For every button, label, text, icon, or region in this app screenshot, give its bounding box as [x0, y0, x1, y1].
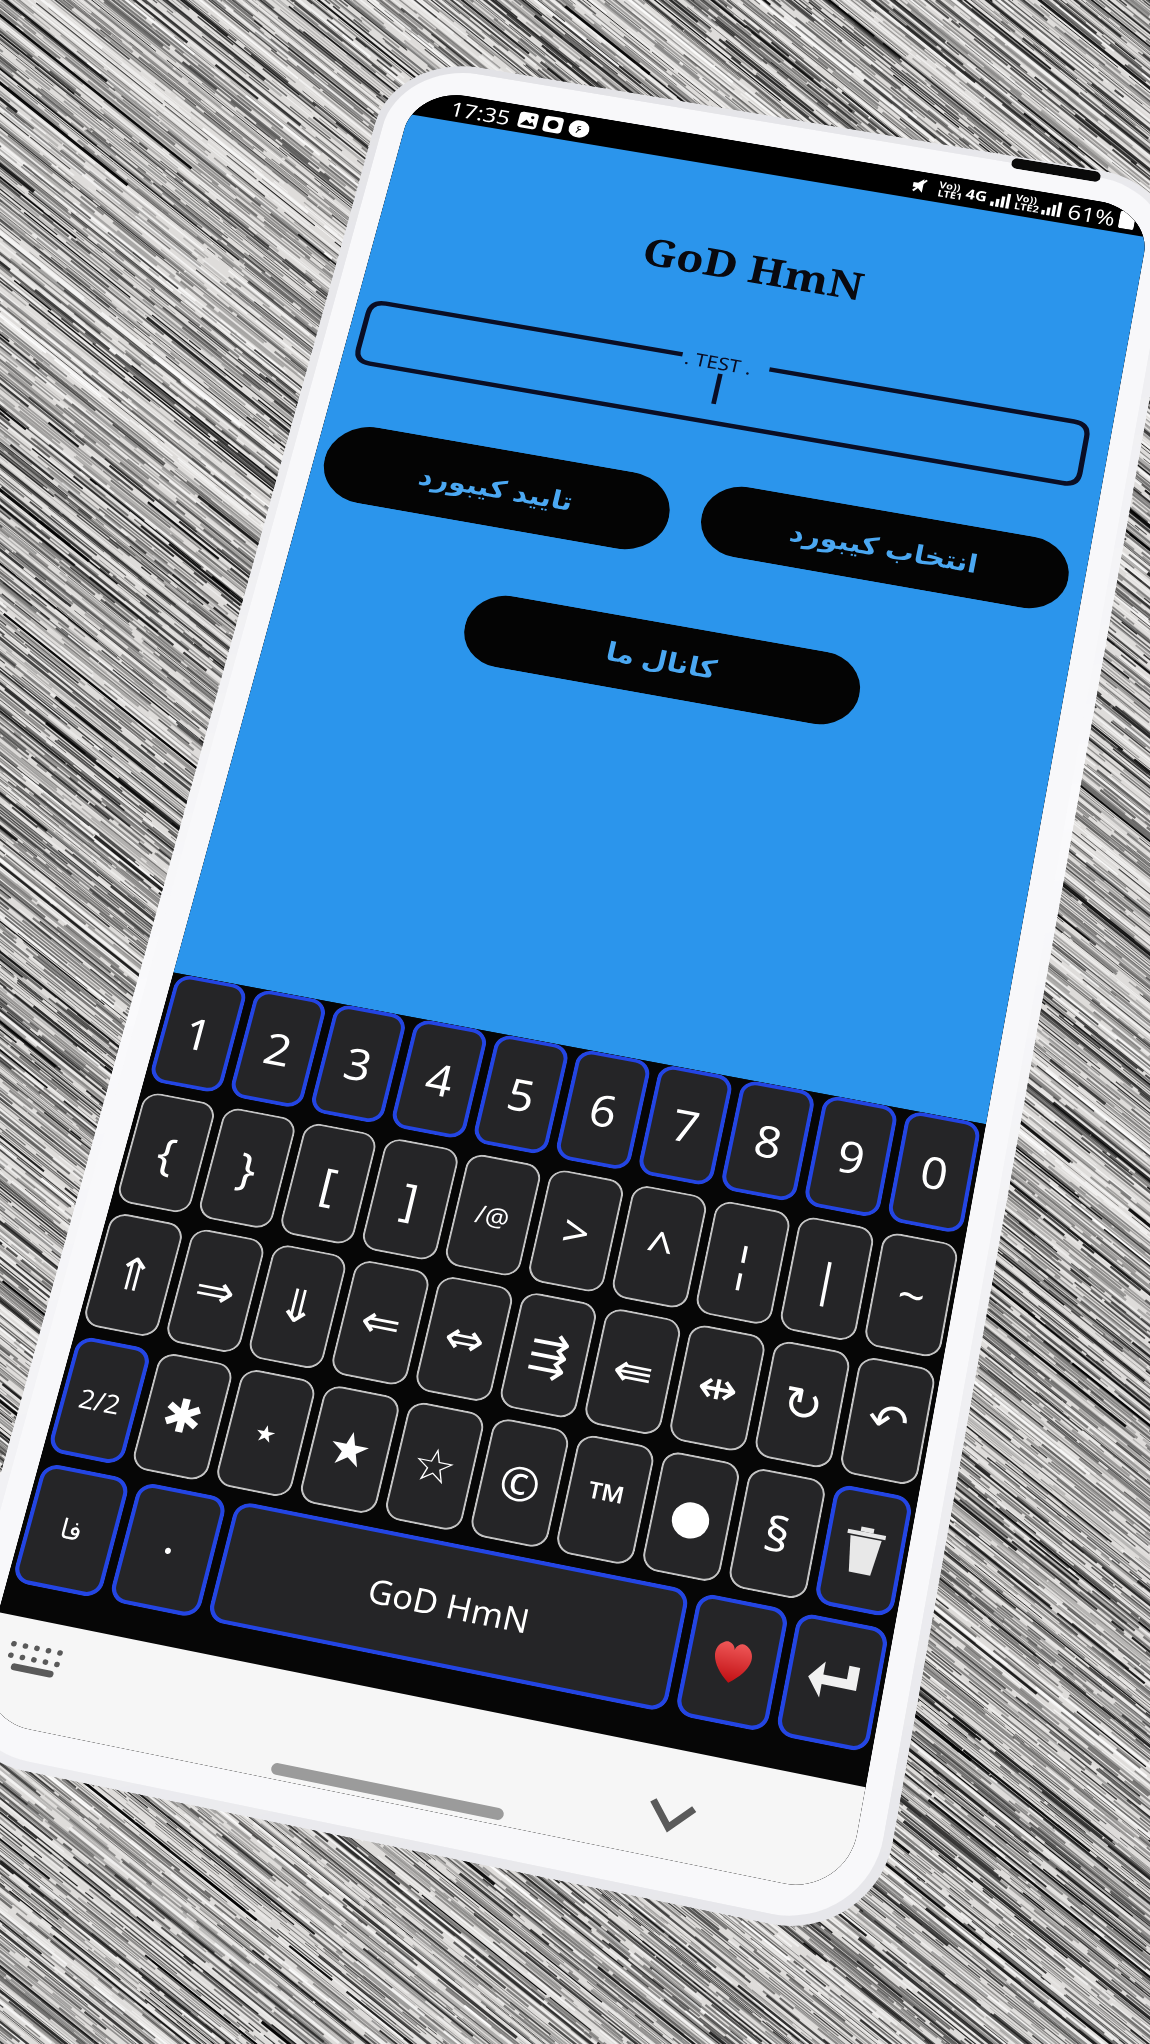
staticText: > [556, 1199, 597, 1264]
staticText: . TEST . [682, 345, 755, 380]
staticText: · [154, 1518, 182, 1581]
staticText: } [231, 1137, 264, 1200]
button[interactable]: ● [640, 1449, 742, 1584]
staticText: ⇶ [523, 1325, 575, 1385]
button[interactable]: 7 [636, 1063, 734, 1187]
button[interactable]: Enter [775, 1612, 890, 1753]
button[interactable]: فا [11, 1462, 131, 1599]
staticText: § [758, 1499, 796, 1568]
button[interactable]: ↻ [752, 1339, 852, 1470]
button[interactable]: 5 [471, 1033, 571, 1156]
button[interactable]: > [526, 1168, 626, 1294]
staticText: 61% [1065, 197, 1118, 232]
staticText: ⇹ [692, 1357, 744, 1418]
staticText: ↶ [863, 1390, 914, 1451]
staticText: 1 [177, 1003, 219, 1065]
button[interactable]: ¦ [694, 1199, 792, 1327]
staticText: انتخاب کیبورد [786, 514, 982, 581]
staticText: 8 [749, 1109, 788, 1173]
button[interactable]: Hide keyboard [645, 1797, 699, 1841]
staticText: ~ [892, 1262, 931, 1328]
button[interactable]: Heart [674, 1592, 790, 1733]
button[interactable]: · [108, 1481, 228, 1619]
button[interactable]: © [468, 1416, 571, 1550]
staticText: 4 [419, 1048, 460, 1111]
button[interactable]: § [726, 1466, 828, 1601]
staticText: ⇚ [608, 1341, 659, 1402]
button[interactable]: 8 [719, 1079, 816, 1203]
button[interactable]: ⋆ [213, 1367, 318, 1499]
staticText: ¦ [724, 1230, 762, 1296]
staticText: Vo)) LTE2 [1013, 191, 1042, 216]
button[interactable]: 2 [228, 988, 328, 1109]
staticText: 2/2 [75, 1379, 125, 1422]
button[interactable]: } [196, 1106, 298, 1230]
staticText: 4G [964, 184, 990, 206]
button[interactable]: ⇶ [497, 1290, 599, 1420]
button[interactable]: ⇒ [164, 1227, 267, 1355]
staticText: ⋆ [244, 1403, 288, 1462]
button[interactable]: ] [359, 1136, 461, 1262]
staticText: ● [665, 1485, 719, 1548]
staticText: ⇒ [189, 1261, 242, 1320]
button[interactable]: 1 [148, 973, 249, 1094]
staticText: 7 [666, 1094, 706, 1157]
button[interactable]: ↶ [838, 1355, 937, 1487]
button[interactable]: ☆ [382, 1400, 487, 1533]
button[interactable]: 4 [389, 1018, 489, 1140]
staticText: © [493, 1448, 548, 1519]
button[interactable]: /@ [443, 1152, 543, 1278]
staticText: کانال ما [603, 633, 720, 687]
staticText: [ [313, 1153, 344, 1215]
button[interactable]: 9 [803, 1094, 899, 1219]
button[interactable]: ⇓ [246, 1243, 349, 1371]
button[interactable]: | [778, 1215, 876, 1343]
button[interactable]: ★ [297, 1383, 402, 1516]
button[interactable]: 2/2 [47, 1335, 153, 1466]
button[interactable]: ⇚ [582, 1306, 683, 1437]
staticText: Vo)) LTE1 [936, 178, 965, 203]
staticText: ] [395, 1168, 426, 1231]
staticText: /@ [472, 1195, 514, 1235]
button[interactable]: ✱ [130, 1351, 235, 1482]
button[interactable]: ⇑ [81, 1211, 185, 1339]
staticText: ☆ [407, 1435, 463, 1497]
staticText: ✱ [156, 1386, 210, 1447]
staticText: ^ [640, 1214, 680, 1280]
button[interactable]: ~ [862, 1231, 960, 1359]
button[interactable]: تایید کیبورد [315, 420, 678, 556]
button[interactable]: Switch keyboard [0, 1636, 74, 1687]
button[interactable]: GoD HmN [206, 1500, 690, 1713]
staticText: GoD HmN [638, 225, 869, 312]
staticText: ⇓ [271, 1276, 324, 1336]
staticText: ⇐ [355, 1292, 407, 1353]
button[interactable]: [ [278, 1121, 379, 1246]
staticText: | [808, 1246, 846, 1312]
button[interactable]: انتخاب کیبورد [694, 480, 1075, 615]
button[interactable]: 3 [309, 1003, 408, 1125]
staticText: 17:35 [447, 95, 514, 131]
staticText: ★ [322, 1418, 378, 1480]
button[interactable]: 0 [886, 1109, 982, 1235]
staticText: 9 [832, 1125, 871, 1189]
button[interactable]: 6 [554, 1048, 652, 1171]
staticText: تایید کیبورد [415, 458, 577, 518]
staticText: 5 [501, 1063, 542, 1126]
staticText: 0 [915, 1140, 954, 1204]
button[interactable]: کانال ما [456, 589, 867, 731]
button[interactable]: { [115, 1091, 217, 1215]
staticText: ⇑ [107, 1245, 160, 1304]
button[interactable]: ⇔ [413, 1274, 515, 1404]
staticText: 2 [257, 1018, 299, 1080]
button[interactable]: ^ [610, 1183, 709, 1310]
button[interactable]: Delete [813, 1483, 914, 1618]
staticText: GoD HmN [363, 1567, 535, 1644]
button[interactable]: ™ [554, 1433, 657, 1567]
button[interactable]: ⇐ [329, 1258, 432, 1387]
button[interactable]: ⇹ [667, 1323, 767, 1453]
staticText: ™ [580, 1465, 631, 1535]
staticText: { [150, 1122, 184, 1184]
staticText: 3 [338, 1033, 379, 1095]
staticText: ۶ [573, 122, 585, 136]
staticText: فا [56, 1513, 86, 1547]
